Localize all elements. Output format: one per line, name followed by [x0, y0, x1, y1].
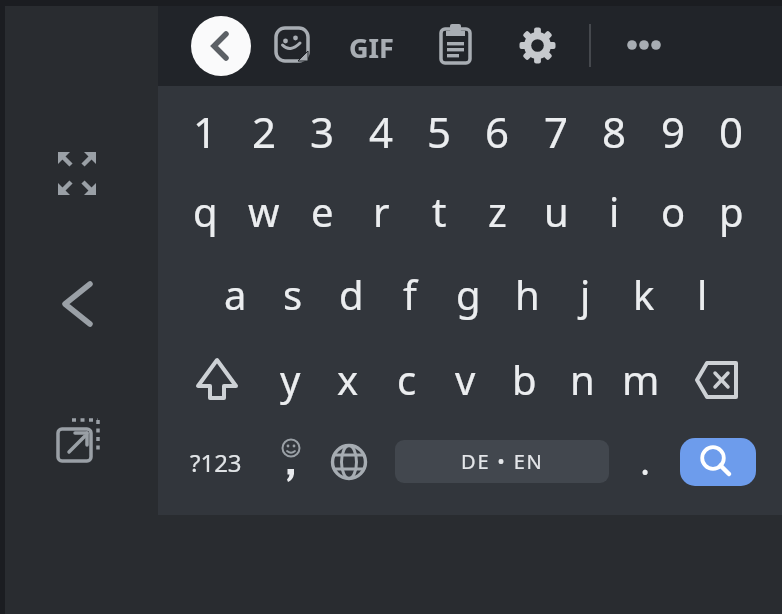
staticText: s — [283, 267, 303, 321]
staticText: . — [640, 434, 651, 482]
staticText: x — [337, 352, 359, 406]
staticText: q — [193, 184, 218, 238]
button[interactable]: d — [323, 262, 379, 326]
staticText: k — [633, 267, 655, 321]
staticText: DE • EN — [461, 448, 544, 475]
button[interactable]: ?123 — [180, 438, 252, 486]
staticText: 8 — [602, 103, 627, 160]
button[interactable] — [268, 432, 312, 494]
button[interactable]: s — [265, 262, 321, 326]
button[interactable]: o — [645, 179, 701, 243]
button[interactable] — [56, 278, 100, 330]
button[interactable] — [190, 352, 244, 406]
staticText: 3 — [310, 103, 335, 160]
button[interactable]: GIF — [344, 29, 398, 61]
staticText: e — [311, 184, 334, 238]
staticText: h — [515, 267, 540, 321]
button[interactable]: 1 — [177, 99, 233, 163]
button[interactable]: 8 — [586, 99, 642, 163]
button[interactable]: b — [496, 347, 552, 411]
button[interactable] — [50, 412, 104, 468]
button[interactable] — [622, 35, 666, 55]
button[interactable] — [680, 438, 756, 486]
staticText: 6 — [485, 103, 510, 160]
button[interactable] — [53, 149, 101, 197]
staticText: j — [580, 267, 591, 321]
button[interactable]: k — [616, 262, 672, 326]
button[interactable]: i — [586, 179, 642, 243]
button[interactable] — [690, 356, 748, 404]
button[interactable]: u — [528, 179, 584, 243]
staticText: p — [719, 184, 744, 238]
button[interactable]: c — [379, 347, 435, 411]
button[interactable] — [434, 20, 478, 68]
button[interactable]: 2 — [236, 99, 292, 163]
staticText: 4 — [369, 103, 394, 160]
button[interactable]: 6 — [469, 99, 525, 163]
button[interactable]: . — [630, 434, 660, 482]
staticText: i — [609, 184, 620, 238]
button[interactable]: 9 — [645, 99, 701, 163]
button[interactable]: 5 — [411, 99, 467, 163]
staticText: l — [697, 267, 708, 321]
button[interactable]: 4 — [353, 99, 409, 163]
button[interactable]: j — [557, 262, 613, 326]
button[interactable] — [270, 20, 314, 64]
staticText: f — [403, 267, 417, 321]
staticText: g — [456, 267, 481, 321]
button[interactable]: 3 — [294, 99, 350, 163]
staticText: GIF — [349, 29, 394, 61]
button[interactable]: 0 — [703, 99, 759, 163]
staticText: b — [512, 352, 537, 406]
button[interactable]: e — [294, 179, 350, 243]
button[interactable]: 7 — [528, 99, 584, 163]
staticText: o — [661, 184, 686, 238]
staticText: c — [397, 352, 417, 406]
staticText: t — [432, 184, 447, 238]
staticText: 0 — [719, 103, 744, 160]
button[interactable] — [328, 440, 372, 484]
staticText: m — [622, 352, 660, 406]
button[interactable]: q — [177, 179, 233, 243]
button[interactable] — [516, 24, 560, 68]
button[interactable]: DE • EN — [395, 440, 609, 483]
button[interactable]: r — [353, 179, 409, 243]
staticText: z — [488, 184, 507, 238]
staticText: 5 — [427, 103, 452, 160]
staticText: n — [570, 352, 595, 406]
button[interactable]: x — [320, 347, 376, 411]
button[interactable]: w — [236, 179, 292, 243]
staticText: u — [544, 184, 569, 238]
button[interactable]: n — [554, 347, 610, 411]
button[interactable]: m — [613, 347, 669, 411]
button[interactable]: v — [437, 347, 493, 411]
staticText: a — [224, 267, 247, 321]
staticText: 9 — [661, 103, 686, 160]
button[interactable]: t — [411, 179, 467, 243]
staticText: 1 — [193, 103, 218, 160]
button[interactable]: f — [382, 262, 438, 326]
staticText: v — [455, 352, 476, 406]
staticText: r — [373, 184, 390, 238]
button[interactable]: p — [703, 179, 759, 243]
staticText: 2 — [252, 103, 277, 160]
staticText: d — [339, 267, 364, 321]
button[interactable] — [191, 16, 251, 76]
button[interactable]: h — [499, 262, 555, 326]
button[interactable]: y — [262, 347, 318, 411]
staticText: ?123 — [190, 446, 242, 479]
staticText: 7 — [544, 103, 569, 160]
button[interactable]: z — [469, 179, 525, 243]
staticText: y — [280, 352, 301, 406]
staticText: w — [248, 184, 280, 238]
button[interactable]: l — [674, 262, 730, 326]
button[interactable]: a — [207, 262, 263, 326]
button[interactable]: g — [440, 262, 496, 326]
